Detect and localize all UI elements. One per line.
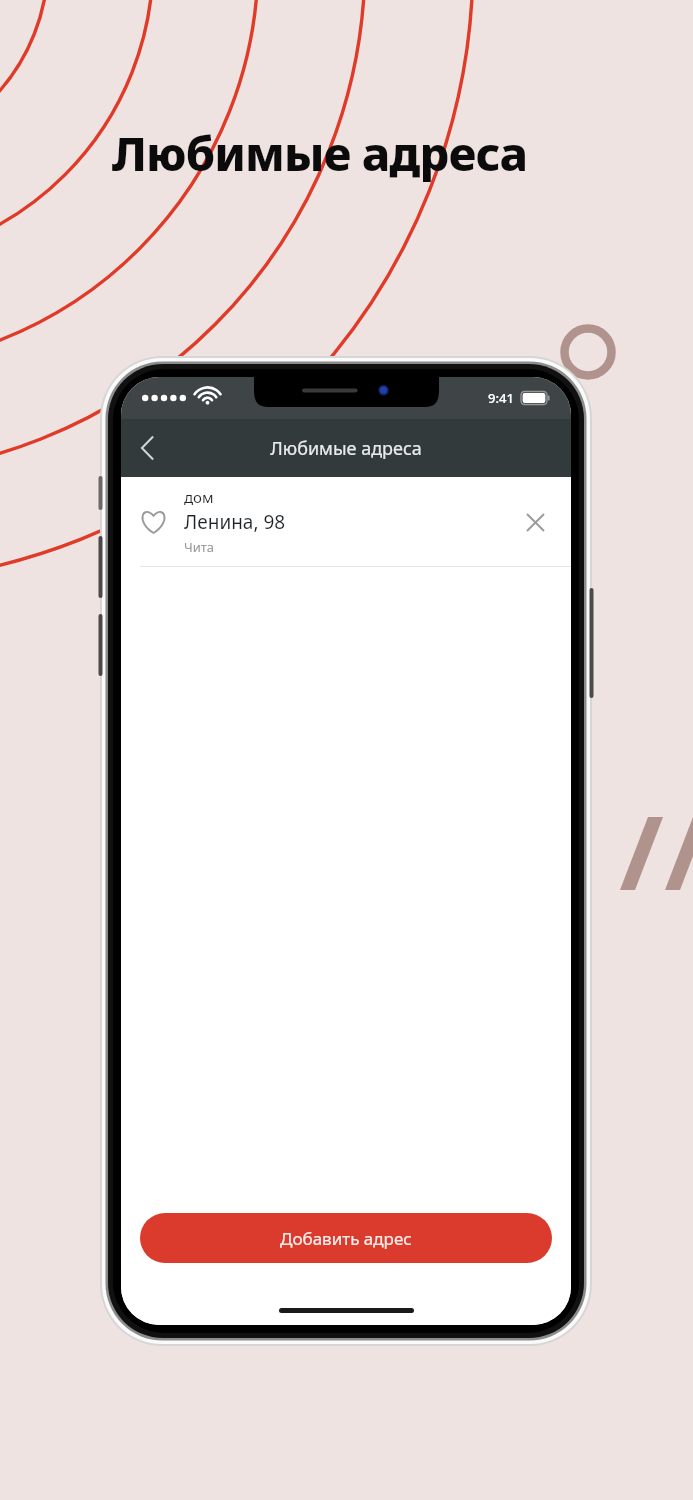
button[interactable]: дом [121, 477, 571, 566]
button[interactable]: Добавить адрес [140, 1213, 552, 1263]
staticText: 9:41 [488, 389, 514, 407]
button[interactable]: Remove address [518, 505, 552, 539]
staticText: Добавить адрес [280, 1227, 412, 1250]
staticText: Чита [184, 538, 215, 556]
staticText: Ленина, 98 [184, 509, 286, 535]
button[interactable]: Back [121, 419, 175, 477]
staticText: Любимые адреса [270, 436, 422, 461]
staticText: Любимые адреса [112, 121, 528, 185]
staticText: дом [184, 487, 214, 507]
